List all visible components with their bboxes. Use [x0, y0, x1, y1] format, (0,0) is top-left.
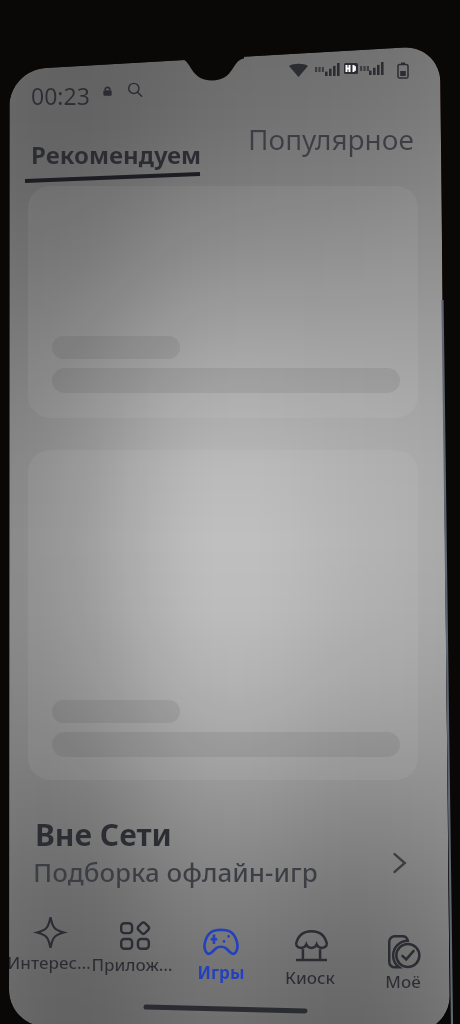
staticText: Игры	[173, 961, 269, 983]
staticText: Рекомендуем	[31, 138, 202, 171]
staticText: Интерес…	[1, 951, 97, 973]
button[interactable]: Вне Сети	[14, 806, 434, 902]
button[interactable]: Рекомендуем	[0, 118, 215, 176]
staticText: 00:23	[31, 80, 90, 111]
button[interactable]	[176, 918, 266, 990]
button[interactable]: Популярное	[215, 104, 430, 162]
staticText: Прилож…	[84, 953, 180, 975]
button[interactable]	[28, 450, 418, 780]
staticText: Моё	[355, 970, 451, 992]
button[interactable]: Search	[127, 82, 144, 99]
button[interactable]	[87, 912, 177, 984]
button[interactable]	[4, 906, 94, 978]
button[interactable]	[358, 925, 448, 997]
staticText: Подборка офлайн-игр	[33, 854, 318, 889]
staticText: Киоск	[262, 966, 358, 988]
staticText: Популярное	[248, 120, 414, 158]
button[interactable]	[28, 186, 418, 418]
other: Screen lock	[101, 84, 114, 97]
button[interactable]	[265, 920, 355, 992]
staticText: Вне Сети	[35, 814, 172, 855]
